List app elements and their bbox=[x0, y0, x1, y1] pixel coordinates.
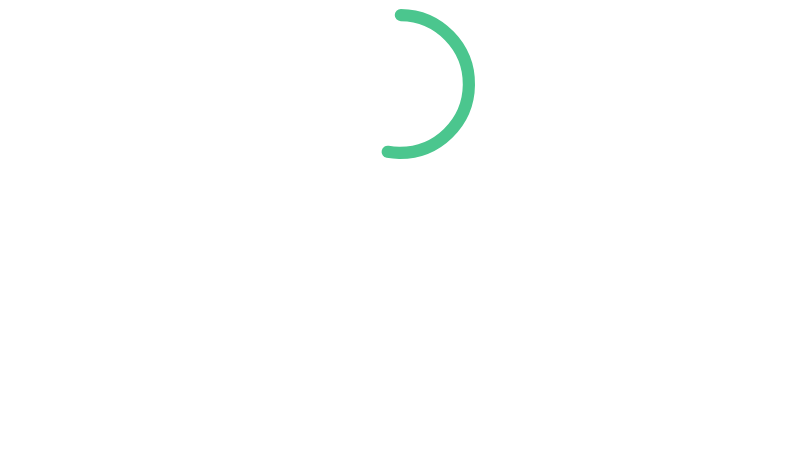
button[interactable]: Loading bbox=[325, 9, 475, 159]
